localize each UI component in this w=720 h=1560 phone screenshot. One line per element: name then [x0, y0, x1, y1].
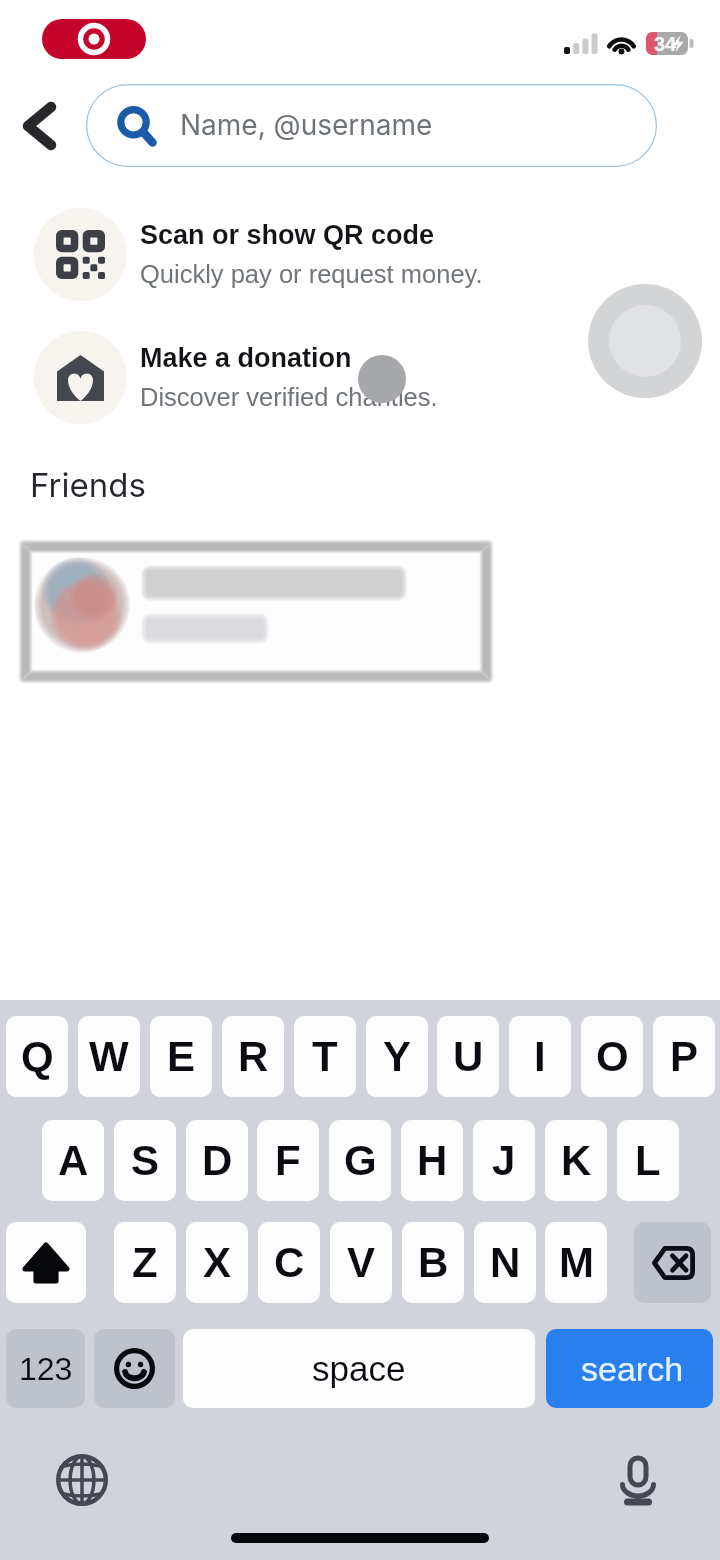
- staticText: Make a donation: [140, 343, 352, 373]
- staticText: Scan or show QR code: [140, 220, 435, 250]
- button[interactable]: G: [329, 1120, 391, 1201]
- button[interactable]: F: [257, 1120, 319, 1201]
- staticText: R: [238, 1033, 269, 1080]
- staticText: G: [344, 1137, 377, 1184]
- button[interactable]: Make a donation: [10, 324, 530, 432]
- staticText: A: [58, 1137, 89, 1184]
- staticText: O: [596, 1033, 629, 1080]
- button[interactable]: X: [186, 1222, 248, 1303]
- button[interactable]: Dictation: [608, 1450, 668, 1510]
- staticText: U: [453, 1033, 484, 1080]
- staticText: C: [274, 1239, 305, 1286]
- staticText: J: [492, 1137, 516, 1184]
- button[interactable]: Q: [6, 1016, 68, 1097]
- staticText: V: [347, 1239, 376, 1286]
- button[interactable]: U: [437, 1016, 499, 1097]
- staticText: N: [490, 1239, 521, 1286]
- button[interactable]: Back: [4, 90, 82, 162]
- button[interactable]: B: [402, 1222, 464, 1303]
- staticText: 123: [19, 1351, 73, 1387]
- button[interactable]: Z: [114, 1222, 176, 1303]
- staticText: S: [131, 1137, 160, 1184]
- staticText: search: [581, 1350, 684, 1388]
- staticText: F: [275, 1137, 301, 1184]
- staticText: K: [561, 1137, 592, 1184]
- button[interactable]: E: [150, 1016, 212, 1097]
- staticText: Q: [21, 1033, 54, 1080]
- button[interactable]: P: [653, 1016, 715, 1097]
- button[interactable]: D: [186, 1120, 248, 1201]
- button[interactable]: A: [42, 1120, 104, 1201]
- button[interactable]: space: [183, 1329, 535, 1408]
- button[interactable]: [14, 535, 498, 688]
- button[interactable]: Switch language: [52, 1450, 112, 1510]
- button[interactable]: Shift: [6, 1222, 86, 1303]
- staticText: Quickly pay or request money.: [140, 260, 483, 288]
- button[interactable]: H: [401, 1120, 463, 1201]
- staticText: M: [559, 1239, 594, 1286]
- button[interactable]: Scan or show QR code: [10, 201, 530, 309]
- button[interactable]: I: [509, 1016, 571, 1097]
- button[interactable]: S: [114, 1120, 176, 1201]
- button[interactable]: Name, @username: [86, 84, 657, 167]
- staticText: 34: [654, 33, 677, 55]
- button[interactable]: Emoji: [94, 1329, 175, 1408]
- staticText: L: [635, 1137, 661, 1184]
- staticText: I: [534, 1033, 546, 1080]
- button[interactable]: 123: [6, 1329, 85, 1408]
- staticText: B: [418, 1239, 449, 1286]
- staticText: Name, @username: [180, 108, 433, 142]
- button[interactable]: C: [258, 1222, 320, 1303]
- button[interactable]: L: [617, 1120, 679, 1201]
- button[interactable]: Y: [366, 1016, 428, 1097]
- button[interactable]: T: [294, 1016, 356, 1097]
- button[interactable]: J: [473, 1120, 535, 1201]
- staticText: Discover verified charities.: [140, 383, 438, 411]
- staticText: E: [167, 1033, 196, 1080]
- button[interactable]: Recording indicator: [42, 19, 146, 59]
- staticText: T: [312, 1033, 338, 1080]
- staticText: Friends: [30, 465, 146, 505]
- staticText: D: [202, 1137, 233, 1184]
- button[interactable]: W: [78, 1016, 140, 1097]
- staticText: space: [312, 1349, 406, 1388]
- button[interactable]: search: [546, 1329, 713, 1408]
- button[interactable]: Backspace: [634, 1222, 711, 1303]
- staticText: H: [417, 1137, 448, 1184]
- button[interactable]: V: [330, 1222, 392, 1303]
- staticText: P: [670, 1033, 699, 1080]
- button[interactable]: K: [545, 1120, 607, 1201]
- button[interactable]: O: [581, 1016, 643, 1097]
- button[interactable]: R: [222, 1016, 284, 1097]
- button[interactable]: N: [474, 1222, 536, 1303]
- staticText: W: [89, 1033, 129, 1080]
- button[interactable]: M: [545, 1222, 607, 1303]
- staticText: X: [203, 1239, 232, 1286]
- staticText: Z: [132, 1239, 158, 1286]
- staticText: Y: [383, 1033, 412, 1080]
